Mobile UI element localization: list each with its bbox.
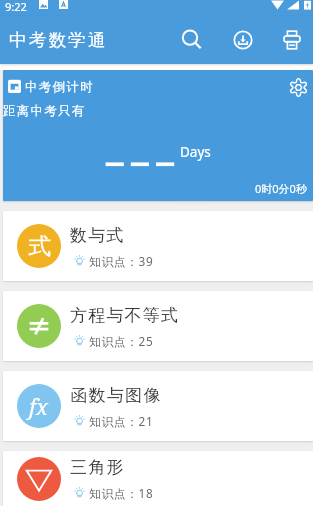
staticText: fx xyxy=(29,391,49,421)
staticText: Days xyxy=(180,143,211,161)
staticText: 知识点：25 xyxy=(89,333,154,349)
button[interactable]: 式 xyxy=(3,211,313,281)
button[interactable]: 方程与不等式 xyxy=(3,291,313,361)
staticText: 数与式 xyxy=(70,225,125,246)
staticText: 知识点：21 xyxy=(89,413,154,429)
button[interactable]: Print xyxy=(272,20,312,60)
button[interactable]: fx xyxy=(3,371,313,441)
staticText: 中考倒计时 xyxy=(25,79,94,95)
staticText: 式 xyxy=(28,232,51,261)
staticText: 知识点：39 xyxy=(89,253,154,269)
button[interactable]: 中考倒计时 xyxy=(3,70,313,201)
button[interactable]: Search xyxy=(172,20,212,60)
staticText: 0时0分0秒 xyxy=(255,181,307,196)
staticText: 三角形 xyxy=(70,457,125,478)
staticText: 距离中考只有 xyxy=(3,103,86,119)
staticText: 中考数学通 xyxy=(9,29,108,51)
button[interactable]: Settings xyxy=(285,74,311,100)
staticText: 函数与图像 xyxy=(70,385,161,406)
button[interactable]: Download xyxy=(223,20,263,60)
staticText: 知识点：18 xyxy=(89,485,154,501)
button[interactable]: 三角形 xyxy=(3,451,313,506)
staticText: 9:22 xyxy=(5,0,27,14)
staticText: 方程与不等式 xyxy=(70,305,180,326)
